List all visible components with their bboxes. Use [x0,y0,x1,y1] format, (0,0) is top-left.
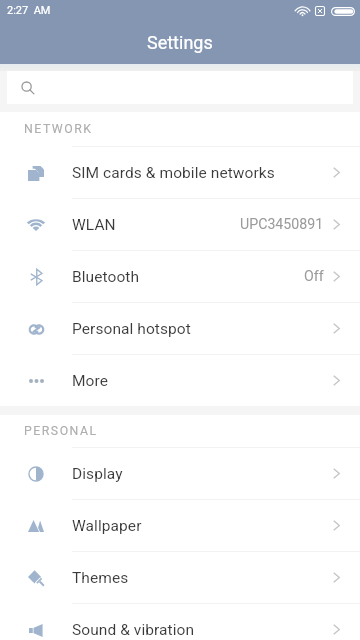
button[interactable]: Bluetooth [0,251,360,302]
button[interactable]: Sound & vibration [0,604,360,640]
button[interactable]: Display [0,448,360,499]
staticText: More [72,372,109,390]
staticText: Bluetooth [72,268,140,286]
staticText: Themes [72,569,129,587]
staticText: WLAN [72,216,116,234]
button[interactable]: Search settings [7,71,353,104]
button[interactable]: WLAN [0,199,360,250]
staticText: Off [304,268,324,285]
staticText: SIM cards & mobile networks [72,164,275,182]
button[interactable]: Themes [0,552,360,603]
staticText: UPC3450891 [240,216,324,233]
staticText: Sound & vibration [72,621,195,639]
staticText: 2:27 AM [7,4,51,17]
button[interactable]: More [0,355,360,406]
button[interactable]: SIM cards & mobile networks [0,147,360,198]
button[interactable]: Personal hotspot [0,303,360,354]
staticText: Personal hotspot [72,320,191,338]
button[interactable]: Wallpaper [0,500,360,551]
staticText: Wallpaper [72,517,142,535]
staticText: NETWORK [24,122,93,136]
staticText: Display [72,465,123,483]
staticText: Settings [147,32,213,53]
staticText: PERSONAL [24,424,98,438]
